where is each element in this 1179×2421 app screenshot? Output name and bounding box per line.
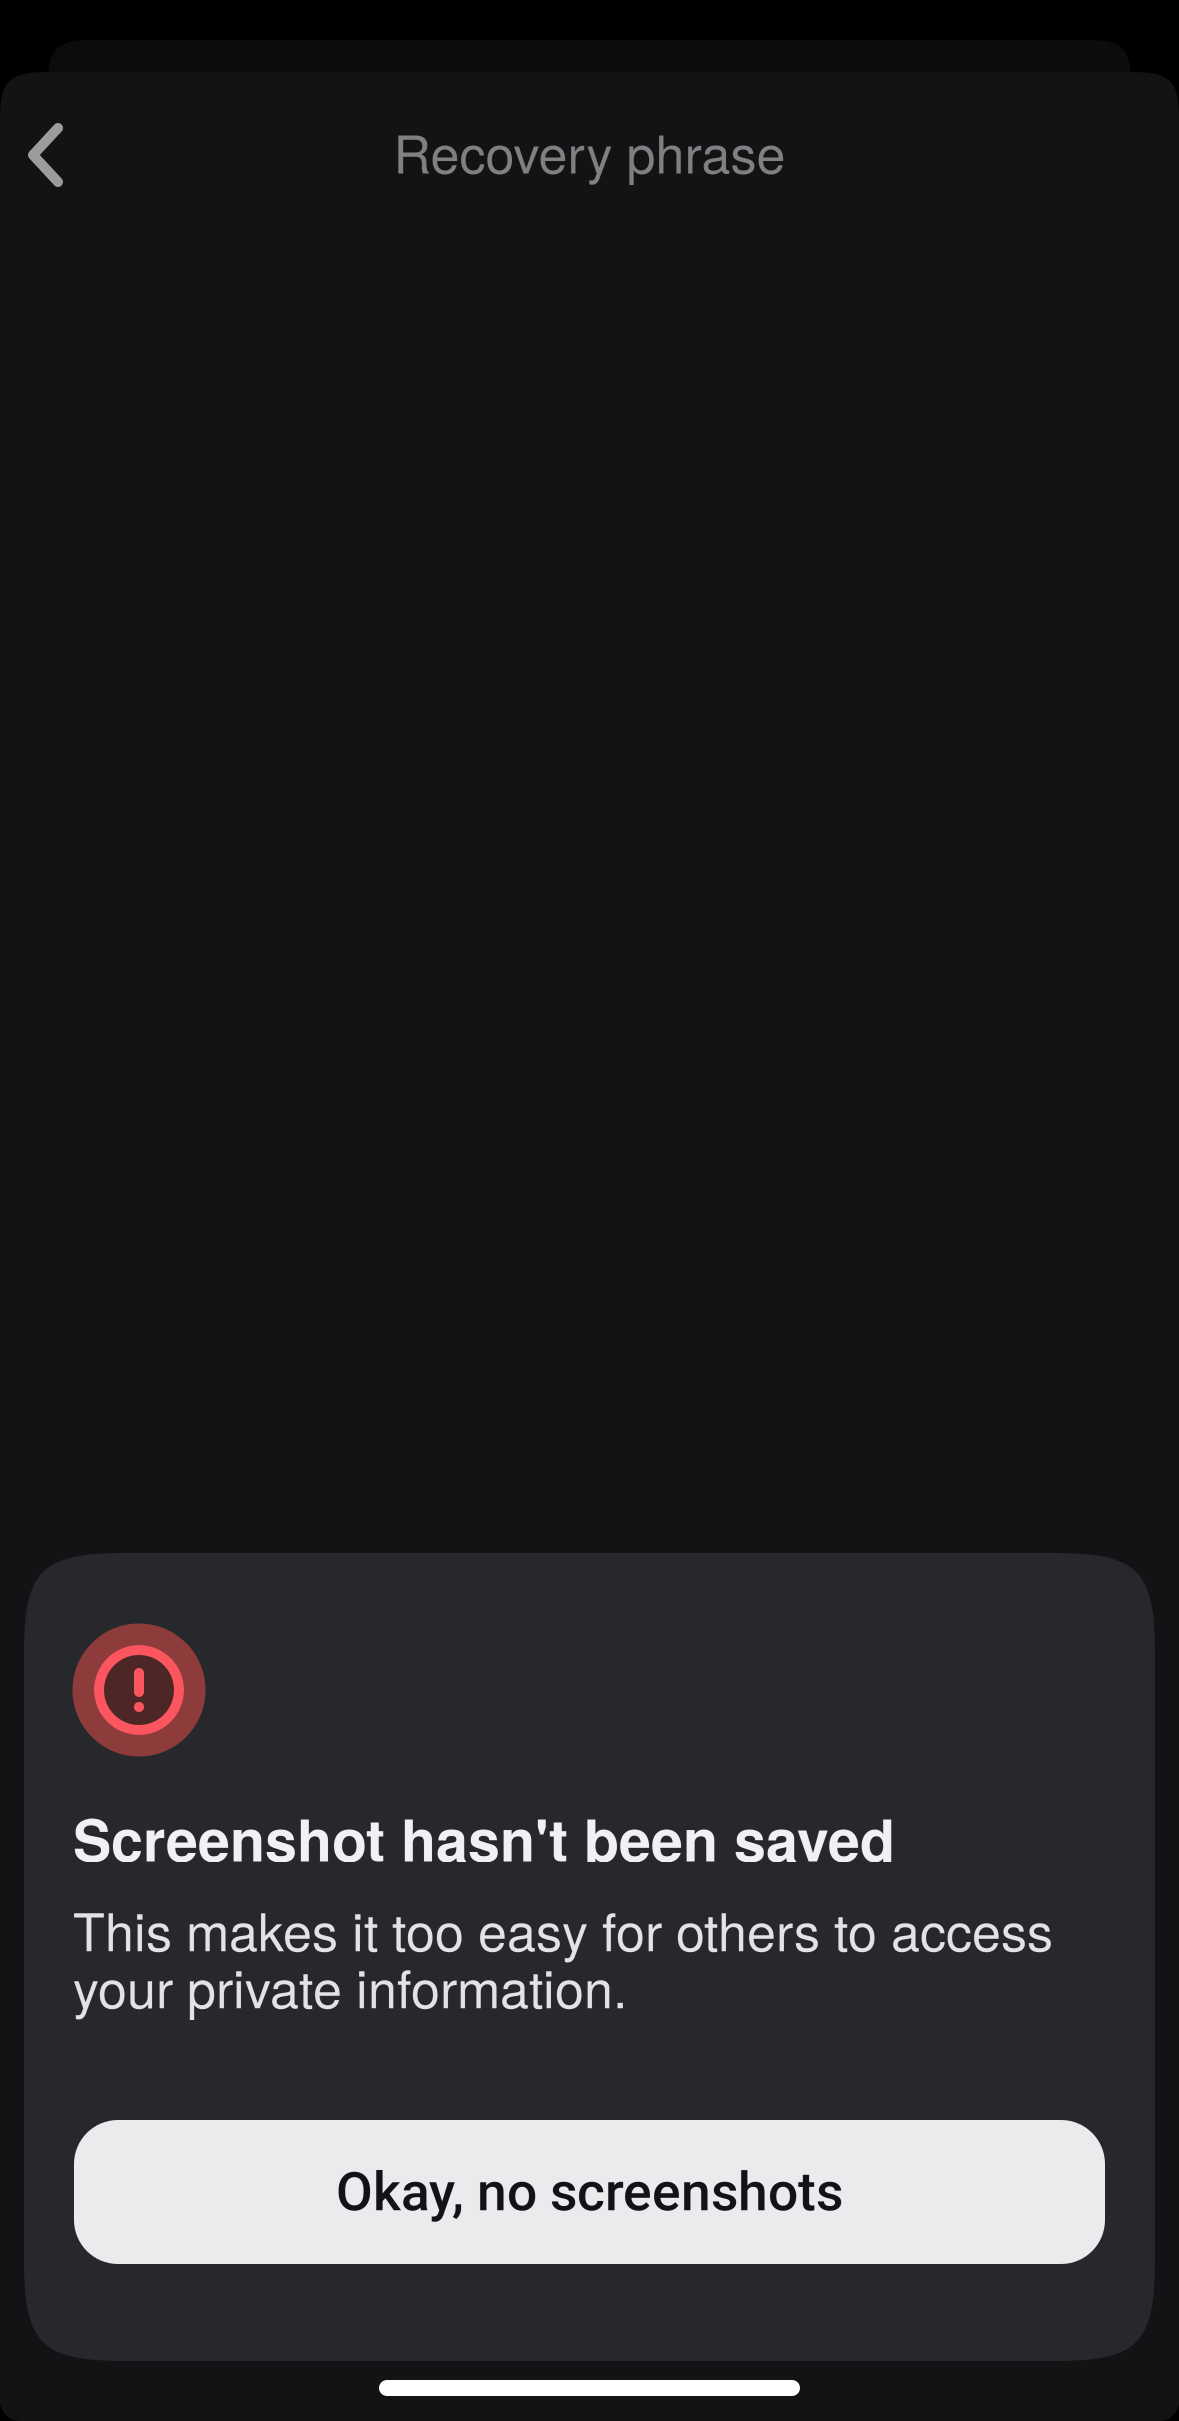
button[interactable]: Back xyxy=(11,90,141,220)
staticText: your private information. xyxy=(73,1948,627,2023)
staticText: This makes it too easy for others to acc… xyxy=(73,1891,1053,1966)
staticText: Recovery phrase xyxy=(393,114,785,188)
button[interactable]: Okay, no screenshots xyxy=(74,2120,1105,2264)
staticText: Screenshot hasn't been saved xyxy=(73,1797,895,1879)
staticText: Okay, no screenshots xyxy=(336,2161,843,2223)
